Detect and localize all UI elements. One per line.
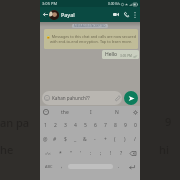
staticText: ' [80,150,82,157]
button[interactable]: 1 [40,118,50,132]
staticText: 4 [74,122,77,129]
button[interactable]: 0 [130,118,140,132]
button[interactable]: / [130,132,140,146]
staticText: ? [120,150,123,157]
staticText: 2 [54,122,57,129]
staticText: ! [110,150,112,157]
button[interactable]: , [57,160,67,173]
staticText: =\< [45,151,51,156]
button[interactable]: 🔒 Messages to this chat and calls are no… [44,29,138,49]
staticText: Payal [61,11,110,18]
button[interactable]: 5 [80,118,90,132]
button[interactable]: 8 [110,118,120,132]
staticText: & [83,136,87,143]
staticText: / [134,136,136,143]
button[interactable]: the [51,106,78,118]
button[interactable]: More options [131,8,139,21]
button[interactable]: Enter [124,160,140,173]
button[interactable]: I [78,106,104,118]
staticText: _ [74,136,77,143]
staticText: . [118,163,120,170]
button[interactable]: 7 [100,118,110,132]
staticText: the [61,109,69,116]
staticText: 0 [134,122,137,129]
staticText: 🔒 Messages to this chat and calls are no… [46,34,136,44]
staticText: + [104,136,107,143]
staticText: : [90,150,92,157]
button[interactable]: 4 [70,118,80,132]
button[interactable]: + [100,132,110,146]
staticText: 9 [124,122,127,129]
button[interactable]: Kahan pahunch?? [42,91,122,105]
staticText: 8 [114,122,117,129]
button[interactable]: Backspace [126,146,140,160]
button[interactable]: 6 [90,118,100,132]
staticText: 6 [94,122,97,129]
button[interactable]: Space [67,160,114,173]
button[interactable]: ; [96,146,106,160]
staticText: I [90,109,92,116]
staticText: 5 [84,122,87,129]
button[interactable]: ? [116,146,126,160]
button[interactable]: Send [124,91,138,105]
button[interactable]: & [80,132,90,146]
button[interactable]: Emoji [40,106,51,118]
button[interactable]: ( [110,132,120,146]
staticText: 3:05 PM [120,54,132,58]
staticText: * [59,150,62,157]
staticText: ABC [45,164,53,169]
staticText: , [61,163,63,170]
staticText: N [115,109,119,116]
staticText: 0.00 K/s [108,2,120,6]
staticText: he [0,142,14,157]
staticText: ; [100,150,102,157]
staticText: 7 [104,122,107,129]
button[interactable]: $ [60,132,70,146]
staticText: MESSAGES ENCRYPTED [74,24,106,28]
staticText: 3 [64,122,67,129]
button[interactable]: # [50,132,60,146]
button[interactable]: " [66,146,76,160]
staticText: $ [64,136,67,143]
button[interactable]: Keyboard settings [130,106,140,118]
staticText: ) [124,136,126,143]
button[interactable]: N [104,106,130,118]
button[interactable]: 2 [50,118,60,132]
button[interactable]: @ [40,132,50,146]
button[interactable]: _ [70,132,80,146]
staticText: " [70,150,73,157]
button[interactable]: Voice call [121,8,131,21]
button[interactable]: * [55,146,66,160]
staticText: 3:05 PM [42,1,58,6]
staticText: # [53,136,57,143]
button[interactable]: 3 [60,118,70,132]
button[interactable]: Back [41,8,49,21]
staticText: 1 [44,122,47,129]
staticText: ( [114,136,116,143]
button[interactable]: ' [76,146,86,160]
staticText: @ [43,136,48,143]
button[interactable]: ABC [40,160,57,173]
staticText: an pa [0,115,30,130]
button[interactable]: : [86,146,96,160]
button[interactable]: =\< [40,146,55,160]
button[interactable]: ) [120,132,130,146]
button[interactable]: ! [106,146,116,160]
staticText: - [94,136,96,143]
button[interactable]: Video call [110,8,121,21]
staticText: Kahan pahunch?? [52,95,114,101]
button[interactable]: 9 [120,118,130,132]
staticText: Hello [105,51,118,58]
